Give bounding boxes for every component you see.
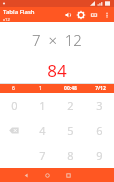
staticText: 6 [12, 85, 15, 92]
button[interactable]: 1 [28, 93, 56, 118]
button[interactable]: Back [20, 169, 32, 181]
staticText: 3 [96, 98, 103, 113]
staticText: 7 × 12 [32, 30, 82, 50]
staticText: 5 [67, 123, 74, 138]
button[interactable]: Backspace [0, 118, 28, 143]
button[interactable]: 9 [85, 143, 114, 168]
staticText: 00:48 [64, 85, 77, 92]
button[interactable]: Recents [62, 169, 74, 181]
button[interactable]: 3 [85, 93, 114, 118]
button[interactable]: Home [41, 169, 53, 181]
staticText: 0 [11, 98, 18, 113]
button[interactable]: Settings [74, 8, 87, 21]
button[interactable]: More options [100, 8, 113, 21]
staticText: 9 [96, 148, 103, 163]
button[interactable]: 7 [28, 143, 56, 168]
button[interactable]: 00:48 [54, 84, 87, 93]
staticText: 8 [67, 148, 74, 163]
staticText: Tabla Flash [3, 8, 35, 16]
staticText: 2 [67, 98, 74, 113]
button[interactable]: 1 [27, 84, 54, 93]
staticText: 1 [39, 85, 42, 92]
button[interactable]: Cards [87, 8, 100, 21]
button[interactable]: 7/12 [87, 84, 114, 93]
staticText: 1 [39, 98, 46, 113]
button[interactable]: 6 [85, 118, 114, 143]
button[interactable]: Sound [61, 8, 74, 21]
staticText: 7/12 [95, 85, 106, 92]
button[interactable]: 5 [56, 118, 85, 143]
button[interactable]: 4 [28, 118, 56, 143]
staticText: x12 [3, 17, 10, 22]
staticText: 6 [96, 123, 103, 138]
staticText: 84 [47, 59, 67, 82]
button[interactable]: 6 [0, 84, 27, 93]
button[interactable]: 8 [56, 143, 85, 168]
button[interactable]: 0 [0, 93, 28, 118]
staticText: 7 [39, 148, 46, 163]
staticText: 4 [39, 123, 46, 138]
button[interactable]: 2 [56, 93, 85, 118]
